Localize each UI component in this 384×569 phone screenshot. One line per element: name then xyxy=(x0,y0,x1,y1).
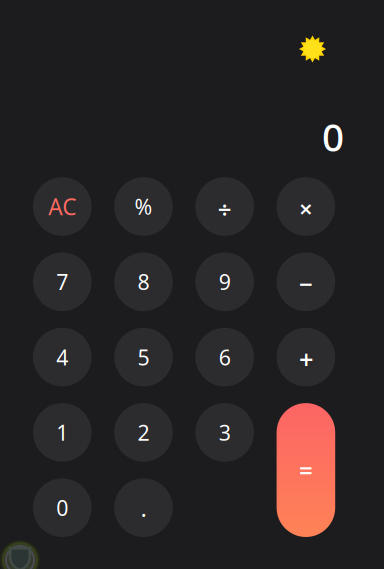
staticText: 1 xyxy=(56,418,68,446)
button[interactable]: ÷ xyxy=(195,177,254,236)
staticText: = xyxy=(299,454,313,486)
button[interactable]: 5 xyxy=(114,328,173,386)
staticText: 3 xyxy=(219,418,231,446)
button[interactable]: + xyxy=(277,328,335,386)
staticText: . xyxy=(140,492,146,524)
staticText: 5 xyxy=(137,343,149,371)
button[interactable]: 2 xyxy=(114,403,173,462)
staticText: 9 xyxy=(219,268,231,296)
button[interactable]: AC xyxy=(33,177,92,236)
button[interactable]: % xyxy=(114,177,173,236)
button[interactable]: 0 xyxy=(33,478,92,537)
button[interactable]: − xyxy=(277,252,335,311)
staticText: × xyxy=(299,193,313,224)
staticText: + xyxy=(299,342,313,376)
button[interactable]: × xyxy=(277,177,335,236)
staticText: AC xyxy=(48,191,76,221)
button[interactable]: 7 xyxy=(33,252,92,311)
staticText: − xyxy=(299,268,313,300)
button[interactable]: = xyxy=(277,403,335,537)
button[interactable]: 4 xyxy=(33,328,92,386)
staticText: 6 xyxy=(219,343,231,371)
staticText: 7 xyxy=(56,268,68,296)
staticText: 8 xyxy=(137,268,149,296)
button[interactable]: 6 xyxy=(195,328,254,386)
staticText: ÷ xyxy=(218,194,232,225)
staticText: 2 xyxy=(137,418,149,446)
button[interactable]: 3 xyxy=(195,403,254,462)
button[interactable]: Toggle appearance xyxy=(299,35,326,62)
button[interactable]: 9 xyxy=(195,252,254,311)
staticText: 0 xyxy=(56,493,68,522)
button[interactable]: . xyxy=(114,478,173,537)
button[interactable]: 8 xyxy=(114,252,173,311)
staticText: % xyxy=(134,192,152,221)
staticText: 4 xyxy=(56,343,68,371)
button[interactable]: 1 xyxy=(33,403,92,462)
staticText: 0 xyxy=(322,111,344,162)
